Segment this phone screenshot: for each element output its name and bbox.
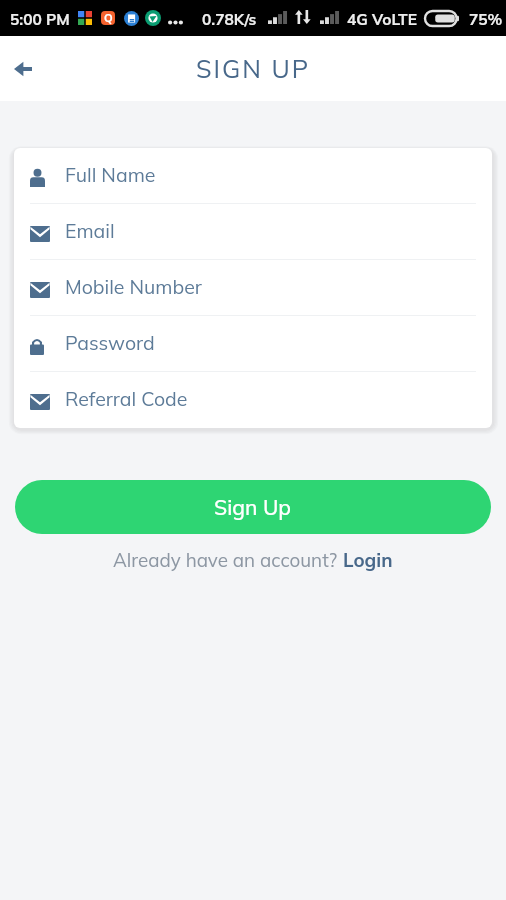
staticText: SIGN UP — [196, 53, 311, 84]
staticText: Mobile Number — [65, 274, 202, 298]
staticText: VoLTE — [372, 9, 417, 28]
button[interactable]: Sign Up — [15, 480, 491, 534]
button[interactable]: Mobile Number — [30, 260, 476, 316]
staticText: Already have an account? — [113, 548, 343, 572]
staticText: 4G — [347, 9, 368, 28]
staticText: 75% — [469, 9, 503, 28]
button[interactable]: Referral Code — [30, 372, 476, 428]
button[interactable]: Password — [30, 316, 476, 372]
staticText: Email — [65, 218, 115, 242]
button[interactable]: Login — [343, 548, 393, 572]
button[interactable]: Full Name — [30, 148, 476, 204]
staticText: Password — [65, 330, 155, 354]
button[interactable]: Email — [30, 204, 476, 260]
staticText: Referral Code — [65, 386, 188, 410]
staticText: Q — [104, 11, 113, 25]
staticText: Sign Up — [214, 494, 292, 520]
staticText: 5:00 PM — [10, 9, 70, 28]
staticText: Full Name — [65, 162, 156, 186]
button[interactable]: Back — [0, 46, 46, 92]
staticText: 0.78K/s — [202, 9, 257, 28]
staticText: Login — [343, 548, 393, 572]
